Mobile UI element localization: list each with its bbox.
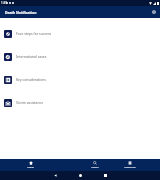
button[interactable]: Victim assistance — [0, 91, 160, 114]
button[interactable]: Back — [54, 174, 57, 177]
button[interactable]: Key considerations — [0, 68, 160, 91]
button[interactable]: Home — [79, 174, 82, 177]
staticText: Death Notification — [5, 10, 37, 15]
staticText: International cases — [16, 54, 47, 59]
staticText: Search — [91, 166, 99, 169]
button[interactable]: Account — [150, 8, 158, 16]
staticText: 1:39 — [1, 1, 7, 5]
button[interactable]: Home — [9, 159, 52, 171]
button[interactable]: Search — [73, 159, 116, 171]
staticText: Home — [27, 166, 34, 169]
staticText: Four steps for success — [16, 31, 52, 36]
button[interactable]: International cases — [0, 45, 160, 68]
button[interactable]: Four steps for success — [0, 22, 160, 45]
staticText: Victim assistance — [16, 100, 44, 105]
button[interactable]: Resources — [116, 159, 143, 171]
staticText: Resources — [124, 166, 136, 169]
staticText: Key considerations — [16, 77, 46, 82]
